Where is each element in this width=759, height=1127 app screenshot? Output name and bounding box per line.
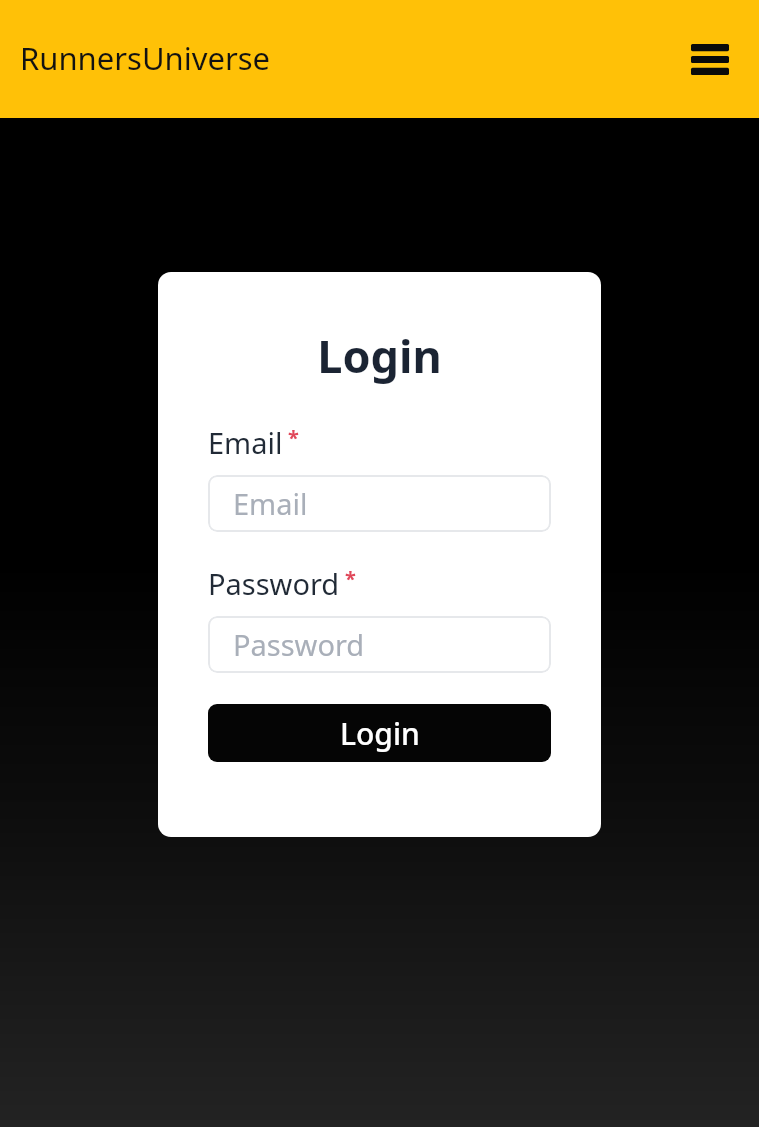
staticText: * [345, 565, 356, 592]
staticText: Email [233, 484, 308, 523]
button[interactable]: Password [208, 616, 551, 673]
staticText: * [288, 424, 299, 451]
button[interactable]: Open menu [683, 32, 737, 86]
staticText: Password [208, 564, 340, 603]
staticText: RunnersUniverse [20, 37, 271, 79]
staticText: Email [208, 423, 283, 462]
staticText: Login [340, 713, 420, 754]
staticText: Password [233, 625, 365, 664]
button[interactable]: Login [208, 704, 551, 762]
staticText: Login [208, 325, 551, 386]
button[interactable]: Email [208, 475, 551, 532]
